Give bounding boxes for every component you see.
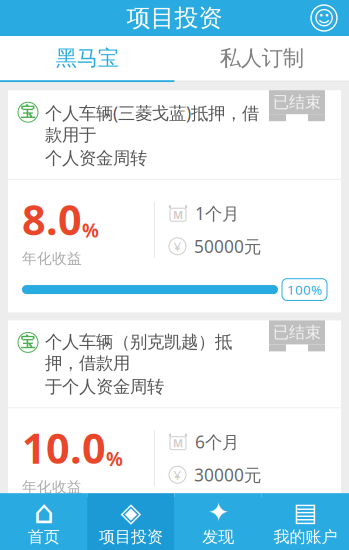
staticText: 100% [287,281,322,298]
staticText: 项目投资 [126,3,222,33]
staticText: 发现 [202,527,234,547]
staticText: 首页 [28,527,60,547]
staticText: ¥ [173,237,181,255]
staticText: ⌂ [34,494,54,530]
button[interactable]: 黑马宝 [0,36,174,80]
staticText: 年化收益 [22,250,82,268]
staticText: 8.0 [22,192,82,247]
staticText: 个人车辆(三菱戈蓝)抵押，借款用于 [45,101,259,145]
button[interactable]: 私人订制 [174,36,349,80]
button[interactable]: 宝 [8,549,341,550]
staticText: 已结束 [273,92,321,112]
button[interactable]: 宝 [8,320,341,541]
staticText: ▤ [293,498,317,527]
staticText: 30000元 [194,463,261,486]
staticText: ☺ [313,7,334,29]
staticText: ✦ [207,497,229,527]
staticText: 个人资金周转 [45,147,147,169]
staticText: ¥ [173,466,181,484]
staticText: 已结束 [273,323,321,342]
button[interactable]: 宝 [8,90,341,312]
staticText: ◈ [120,497,141,527]
staticText: 年化收益 [22,478,82,496]
staticText: M [173,436,183,450]
button[interactable]: ✦ [174,493,262,550]
staticText: 100% [287,509,322,527]
staticText: 宝 [20,333,35,351]
staticText: % [106,446,123,471]
button[interactable]: 账户 [311,5,349,31]
staticText: 宝 [20,103,35,121]
staticText: 10.0 [22,420,106,475]
button[interactable]: ◈ [87,493,174,550]
button[interactable]: ▤ [262,493,349,550]
staticText: 6个月 [195,430,239,453]
staticText: 项目投资 [99,527,163,547]
staticText: 黑马宝 [56,45,119,71]
staticText: M [173,208,183,222]
staticText: 50000元 [194,235,261,258]
staticText: 我的账户 [273,527,337,547]
staticText: 私人订制 [220,45,304,71]
staticText: 个人车辆（别克凯越）抵押，借款用 [45,331,232,374]
staticText: 1个月 [195,202,239,225]
staticText: 于个人资金周转 [45,376,164,397]
staticText: % [82,218,99,243]
button[interactable]: ⌂ [0,493,87,550]
